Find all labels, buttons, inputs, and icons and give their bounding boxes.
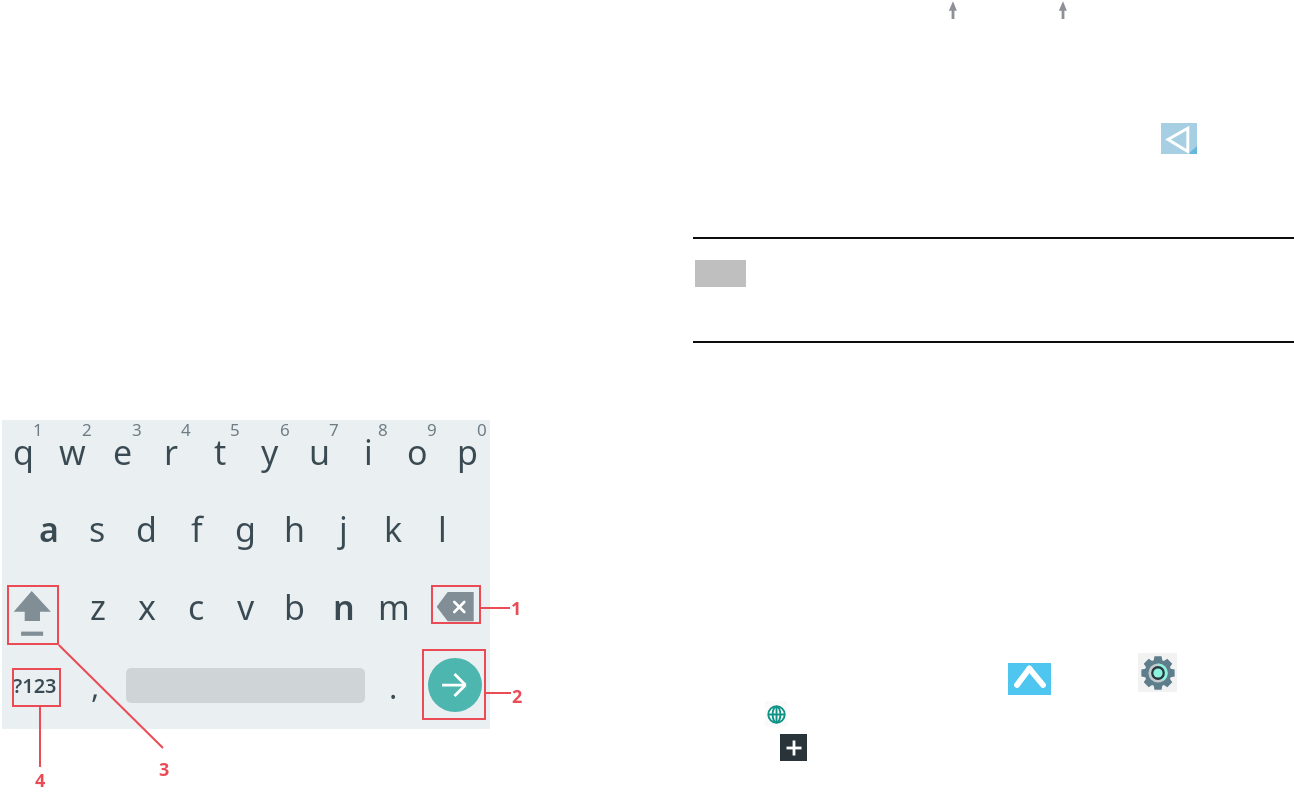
button[interactable]: j xyxy=(319,502,368,556)
staticText: u xyxy=(309,429,331,475)
staticText: j xyxy=(339,506,348,552)
button[interactable]: Add xyxy=(780,734,807,761)
button[interactable]: m xyxy=(369,580,418,634)
staticText: 3 xyxy=(159,757,170,779)
staticText: r xyxy=(164,429,179,475)
button[interactable]: w xyxy=(48,425,97,479)
staticText: 1 xyxy=(33,418,43,438)
staticText: 5 xyxy=(230,418,240,438)
button[interactable]: y xyxy=(245,425,294,479)
staticText: i xyxy=(364,429,373,475)
button[interactable]: Back xyxy=(1161,123,1197,154)
button[interactable]: a xyxy=(24,502,73,556)
staticText: . xyxy=(389,666,398,706)
staticText: y xyxy=(261,429,279,475)
staticText: n xyxy=(333,584,355,630)
button[interactable]: q xyxy=(0,425,48,479)
button[interactable]: t xyxy=(196,425,245,479)
staticText: q xyxy=(13,429,34,475)
button[interactable]: Enter xyxy=(428,658,482,712)
button[interactable]: n xyxy=(319,580,368,634)
button[interactable]: r xyxy=(147,425,196,479)
button[interactable]: Settings xyxy=(1138,653,1177,692)
staticText: e xyxy=(113,429,133,475)
button[interactable]: o xyxy=(393,425,442,479)
button[interactable]: s xyxy=(73,502,122,556)
button[interactable]: u xyxy=(295,425,344,479)
staticText: l xyxy=(438,506,447,552)
staticText: b xyxy=(284,584,305,630)
button[interactable]: i xyxy=(344,425,393,479)
button[interactable]: b xyxy=(270,580,319,634)
button[interactable]: ?123 xyxy=(11,667,59,703)
staticText: g xyxy=(235,506,256,552)
staticText: 1 xyxy=(511,596,522,618)
staticText: k xyxy=(384,506,403,552)
staticText: 0 xyxy=(477,418,487,438)
button[interactable]: Collapse xyxy=(1008,663,1051,695)
staticText: 2 xyxy=(512,684,523,706)
button[interactable]: Language xyxy=(765,701,787,727)
staticText: s xyxy=(89,506,106,552)
button[interactable]: , xyxy=(78,665,112,705)
staticText: 6 xyxy=(280,418,290,438)
button[interactable]: Shift xyxy=(1057,0,1069,20)
button[interactable]: d xyxy=(122,502,171,556)
button[interactable]: z xyxy=(73,580,122,634)
button[interactable]: k xyxy=(369,502,418,556)
staticText: x xyxy=(138,584,156,630)
button[interactable]: . xyxy=(376,666,410,706)
staticText: 8 xyxy=(378,418,388,438)
button[interactable]: h xyxy=(270,502,319,556)
staticText: ?123 xyxy=(13,672,57,699)
staticText: c xyxy=(188,584,205,630)
staticText: m xyxy=(378,584,410,630)
staticText: 3 xyxy=(132,418,142,438)
button[interactable]: Shift xyxy=(947,0,959,20)
staticText: d xyxy=(136,506,157,552)
staticText: a xyxy=(39,506,59,552)
staticText: 7 xyxy=(329,418,339,438)
button[interactable]: Backspace xyxy=(431,585,481,624)
staticText: , xyxy=(91,665,100,705)
staticText: 4 xyxy=(35,768,46,790)
staticText: h xyxy=(284,506,306,552)
staticText: 9 xyxy=(427,418,437,438)
button[interactable]: Shift xyxy=(7,585,59,645)
staticText: 4 xyxy=(181,418,191,438)
staticText: w xyxy=(59,429,86,475)
button[interactable]: x xyxy=(122,580,171,634)
staticText: o xyxy=(407,429,428,475)
button[interactable]: c xyxy=(172,580,221,634)
staticText: p xyxy=(457,429,478,475)
button[interactable]: e xyxy=(98,425,147,479)
staticText: t xyxy=(214,429,227,475)
button[interactable]: l xyxy=(418,502,467,556)
staticText: v xyxy=(237,584,255,630)
button[interactable]: p xyxy=(443,425,492,479)
button[interactable]: f xyxy=(172,502,221,556)
staticText: f xyxy=(191,506,203,552)
staticText: 2 xyxy=(82,418,92,438)
button[interactable]: g xyxy=(221,502,270,556)
button[interactable]: v xyxy=(221,580,270,634)
staticText: z xyxy=(90,584,106,630)
